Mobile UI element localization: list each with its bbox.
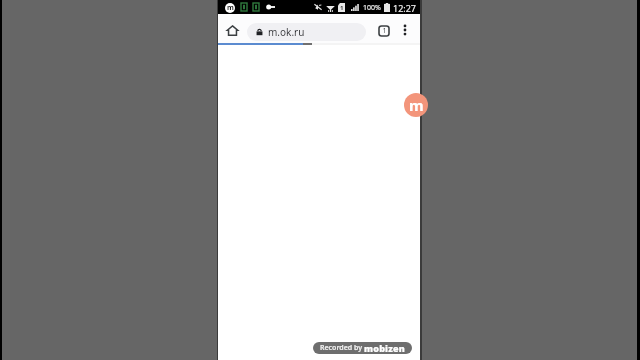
staticText: 1 — [382, 26, 387, 36]
button[interactable]: Home — [220, 17, 244, 43]
staticText: m — [227, 3, 234, 13]
staticText: 12:27 — [393, 2, 417, 14]
staticText: m — [409, 95, 424, 115]
staticText: m.ok.ru — [268, 25, 305, 39]
button[interactable]: Web page content — [218, 45, 420, 360]
staticText: 1 — [340, 4, 344, 12]
button[interactable]: m.ok.ru — [247, 23, 366, 41]
button[interactable]: Tabs — [377, 24, 390, 37]
button[interactable]: Odnoklassniki logo — [404, 93, 428, 117]
staticText: 100% — [363, 3, 381, 13]
staticText: mobizen — [364, 342, 406, 354]
staticText: Recorded by — [320, 343, 364, 353]
button[interactable]: More options — [398, 23, 412, 37]
